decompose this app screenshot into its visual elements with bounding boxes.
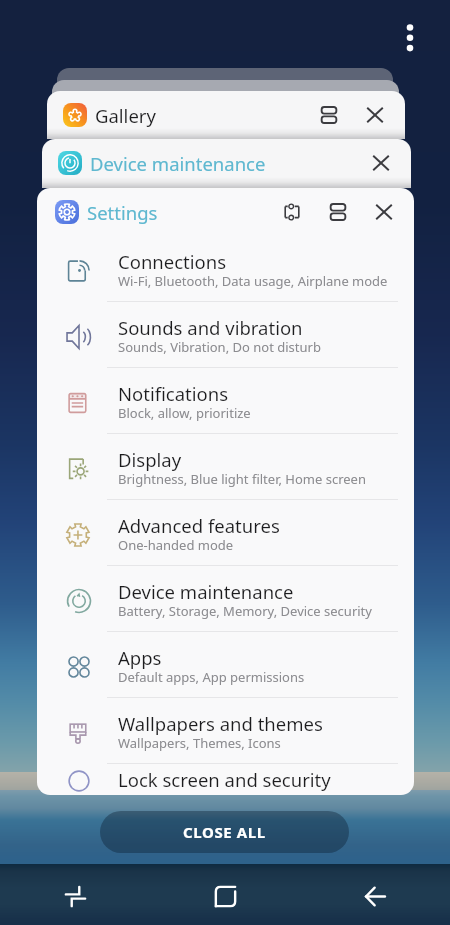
- button[interactable]: [52, 80, 399, 104]
- staticText: One-handed mode: [118, 536, 234, 554]
- staticText: Advanced features: [118, 513, 280, 538]
- button[interactable]: Split screen: [306, 92, 352, 138]
- button[interactable]: Sounds and vibration: [37, 302, 414, 368]
- button[interactable]: Display: [37, 434, 414, 500]
- staticText: Device maintenance: [118, 579, 294, 604]
- button[interactable]: Connections: [37, 236, 414, 302]
- staticText: Block, allow, prioritize: [118, 404, 251, 422]
- staticText: Default apps, App permissions: [118, 668, 305, 686]
- button[interactable]: Recent apps: [0, 866, 150, 925]
- button[interactable]: Pin: [269, 189, 315, 235]
- staticText: Wi-Fi, Bluetooth, Data usage, Airplane m…: [118, 272, 388, 290]
- button[interactable]: CLOSE ALL: [100, 811, 349, 853]
- staticText: Lock screen and security: [118, 767, 331, 792]
- staticText: Brightness, Blue light filter, Home scre…: [118, 470, 366, 488]
- button[interactable]: Apps: [37, 632, 414, 698]
- staticText: Gallery: [95, 103, 156, 128]
- staticText: Wallpapers, Themes, Icons: [118, 734, 281, 752]
- button[interactable]: Close: [352, 92, 398, 138]
- button[interactable]: [57, 68, 393, 92]
- button[interactable]: More options: [390, 16, 430, 56]
- staticText: Battery, Storage, Memory, Device securit…: [118, 602, 372, 620]
- button[interactable]: Wallpapers and themes: [37, 698, 414, 764]
- button[interactable]: Close: [358, 140, 404, 186]
- button[interactable]: Home: [150, 866, 300, 925]
- staticText: Device maintenance: [90, 151, 266, 176]
- staticText: CLOSE ALL: [183, 822, 266, 842]
- button[interactable]: Lock screen and security: [37, 764, 414, 795]
- button[interactable]: Split screen: [315, 189, 361, 235]
- button[interactable]: Advanced features: [37, 500, 414, 566]
- staticText: Wallpapers and themes: [118, 711, 323, 736]
- button[interactable]: Back: [300, 866, 450, 925]
- staticText: Connections: [118, 249, 227, 274]
- staticText: Display: [118, 447, 182, 472]
- staticText: Settings: [87, 200, 158, 225]
- button[interactable]: Device maintenance: [37, 566, 414, 632]
- staticText: Sounds, Vibration, Do not disturb: [118, 338, 321, 356]
- button[interactable]: Notifications: [37, 368, 414, 434]
- staticText: Apps: [118, 645, 162, 670]
- button[interactable]: Close: [361, 189, 407, 235]
- staticText: Notifications: [118, 381, 229, 406]
- staticText: Sounds and vibration: [118, 315, 303, 340]
